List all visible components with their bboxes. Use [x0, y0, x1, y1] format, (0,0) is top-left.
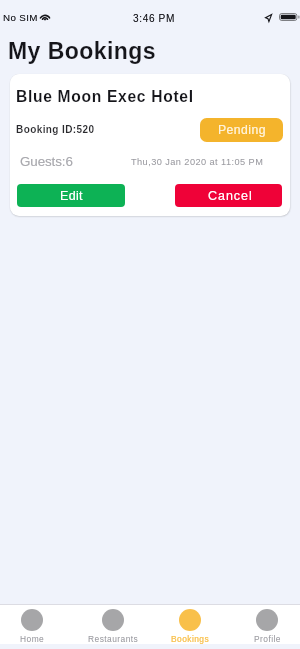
- button[interactable]: Profile: [225, 605, 300, 644]
- button[interactable]: Restaurants: [75, 605, 150, 644]
- other: Wi-Fi signal: [39, 13, 51, 21]
- staticText: Edit: [60, 189, 83, 203]
- button[interactable]: Bookings: [152, 605, 227, 644]
- button[interactable]: Edit: [17, 184, 125, 207]
- button[interactable]: Home: [0, 605, 75, 644]
- staticText: Pending: [218, 123, 266, 137]
- other: Location services active: [265, 14, 272, 22]
- staticText: Home: [20, 634, 45, 643]
- staticText: My Bookings: [8, 38, 157, 64]
- staticText: Bookings: [171, 634, 210, 643]
- button[interactable]: Blue Moon Exec Hotel: [10, 74, 290, 216]
- staticText: 3:46 PM: [133, 13, 175, 24]
- staticText: Booking ID:520: [16, 124, 95, 135]
- staticText: Cancel: [208, 189, 253, 203]
- button[interactable]: Cancel: [175, 184, 282, 207]
- staticText: Blue Moon Exec Hotel: [16, 88, 194, 105]
- staticText: Restaurants: [88, 634, 139, 643]
- staticText: Profile: [254, 634, 281, 643]
- other: Battery full: [279, 13, 300, 21]
- staticText: Thu,30 Jan 2020 at 11:05 PM: [131, 157, 264, 167]
- staticText: No SIM: [3, 12, 38, 23]
- button[interactable]: Pending: [200, 118, 283, 142]
- staticText: Guests:6: [20, 154, 73, 169]
